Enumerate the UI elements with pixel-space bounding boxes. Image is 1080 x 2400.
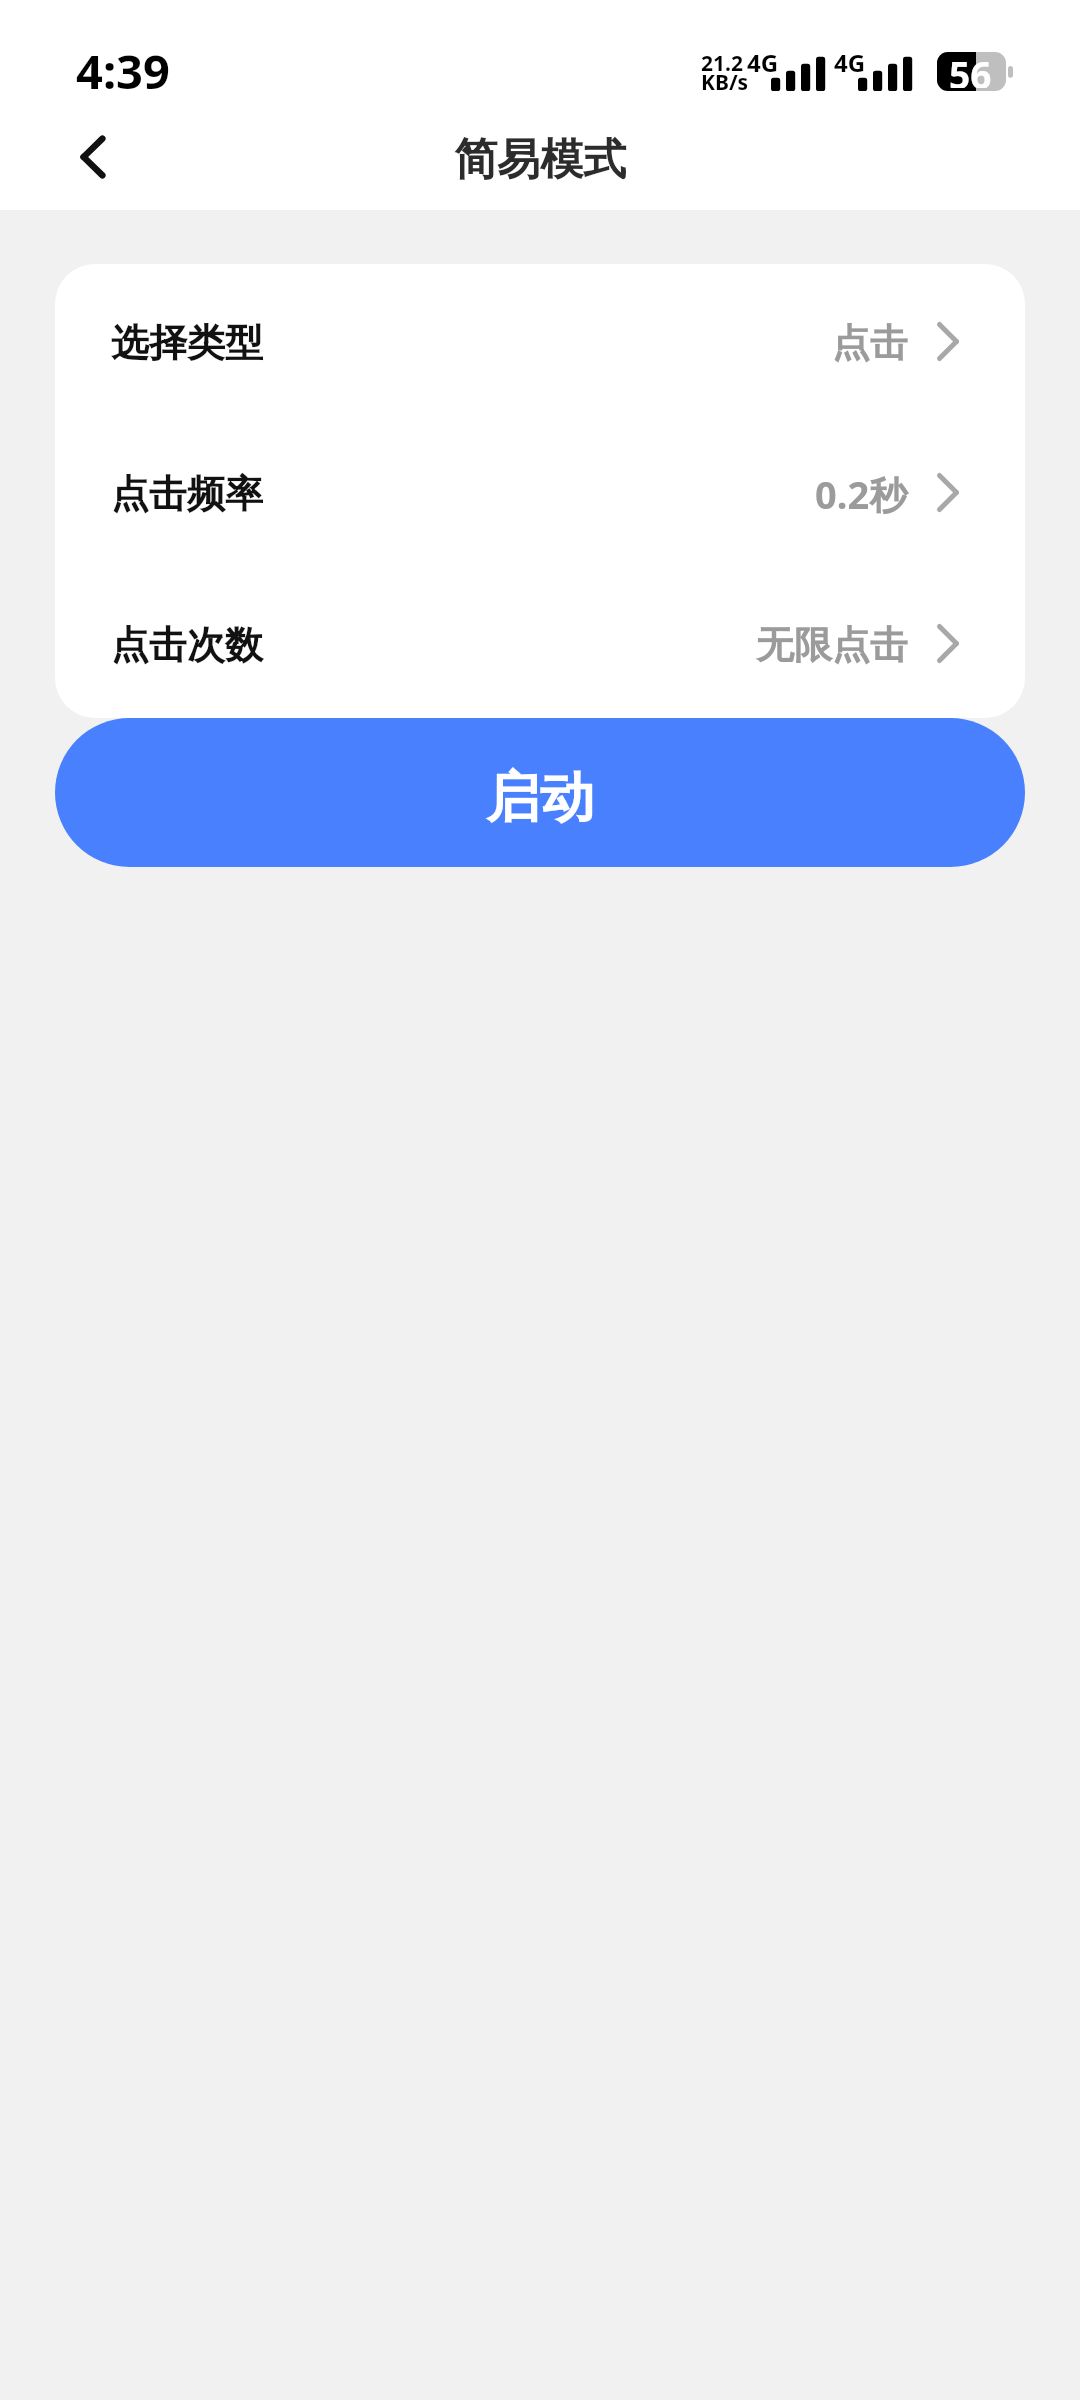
button[interactable]: 选择类型 (55, 267, 1025, 418)
staticText: 0.2秒 (815, 468, 908, 520)
staticText: 简易模式 (454, 133, 626, 187)
staticText: 选择类型 (111, 319, 263, 367)
button[interactable]: Back (58, 125, 128, 195)
button[interactable]: 启动 (55, 718, 1025, 867)
button[interactable]: 点击次数 (55, 569, 1025, 718)
staticText: 点击 (832, 319, 908, 367)
staticText: 56 (949, 49, 992, 88)
staticText: 4:39 (76, 39, 170, 103)
staticText: 4G (834, 46, 866, 79)
staticText: 启动 (486, 764, 594, 832)
staticText: 无限点击 (756, 621, 908, 669)
staticText: KB/s (701, 68, 749, 97)
staticText: 点击次数 (111, 621, 263, 669)
button[interactable]: 点击频率 (55, 418, 1025, 569)
staticText: 4G (747, 46, 779, 79)
staticText: 点击频率 (111, 470, 263, 518)
staticText: 21.2 (701, 49, 743, 78)
